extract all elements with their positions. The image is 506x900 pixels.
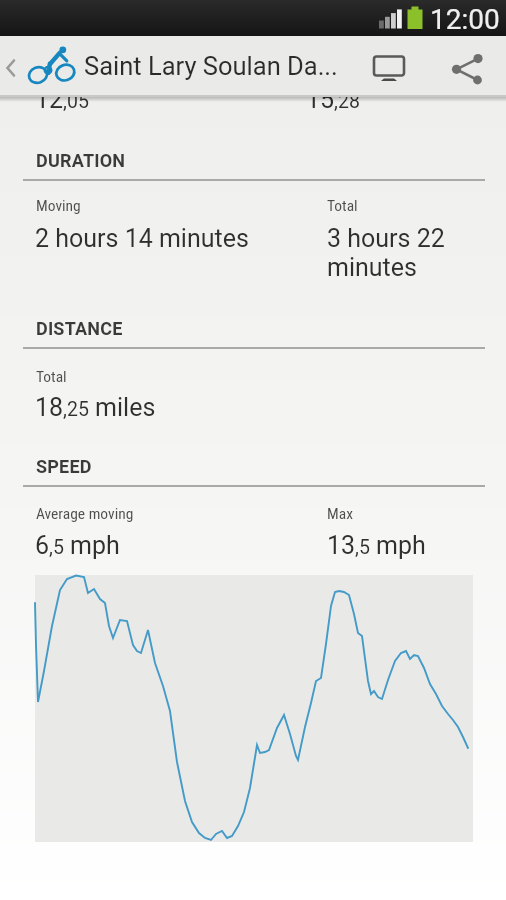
staticText: 12,05 [35, 97, 89, 114]
staticText: Total [327, 197, 358, 215]
staticText: 12:00 [430, 3, 500, 36]
staticText: Saint Lary Soulan Da... [84, 51, 338, 81]
button[interactable] [437, 42, 497, 89]
staticText: Average moving [36, 505, 134, 523]
staticText: 15,28 [306, 97, 360, 114]
staticText: DISTANCE [36, 318, 123, 339]
staticText: DURATION [36, 150, 126, 171]
staticText: Max [327, 505, 353, 523]
staticText: 6,5 mph [35, 531, 120, 560]
staticText: Moving [36, 197, 81, 215]
staticText: 13,5 mph [327, 531, 426, 560]
staticText: Total [36, 368, 67, 386]
staticText: 2 hours 14 minutes [35, 224, 249, 253]
staticText: 3 hours 22 minutes [327, 224, 487, 282]
button[interactable]: Saint Lary Soulan Da... [0, 36, 350, 95]
button[interactable] [358, 42, 418, 89]
staticText: SPEED [36, 456, 92, 477]
staticText: 18,25 miles [35, 393, 156, 422]
